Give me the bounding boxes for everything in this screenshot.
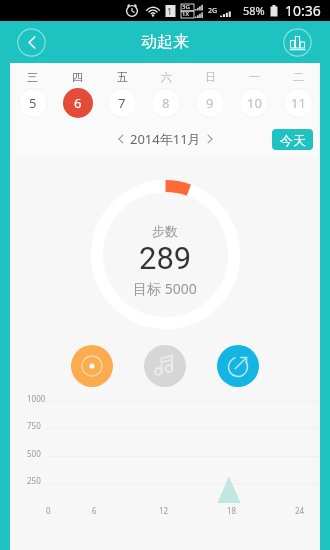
staticText: 2G [208, 6, 218, 16]
staticText: 5 [29, 94, 37, 112]
button[interactable]: Back [17, 28, 46, 57]
button[interactable]: Previous month [112, 130, 130, 148]
staticText: 9 [206, 94, 214, 112]
staticText: 250 [27, 475, 41, 486]
staticText: 500 [27, 448, 41, 459]
button[interactable]: 二 [276, 63, 320, 120]
staticText: 10 [247, 94, 262, 112]
staticText: 10:36 [285, 1, 321, 20]
staticText: 二 [293, 70, 304, 84]
staticText: 三 [27, 70, 38, 84]
staticText: 58% [243, 3, 265, 18]
staticText: 四 [72, 70, 83, 84]
staticText: 目标 5000 [133, 279, 197, 298]
staticText: 1 [167, 5, 173, 17]
staticText: 六 [161, 70, 172, 84]
staticText: 12 [159, 505, 169, 516]
button[interactable]: 一 [232, 63, 276, 120]
button[interactable]: 三 [10, 63, 55, 120]
button[interactable]: Statistics [283, 28, 312, 57]
staticText: 1X [182, 10, 189, 18]
staticText: 24 [295, 505, 305, 516]
staticText: 8 [162, 94, 170, 112]
staticText: 日 [205, 70, 216, 84]
staticText: 0 [46, 505, 51, 516]
button[interactable]: 六 [144, 63, 188, 120]
button[interactable]: Record [71, 345, 113, 387]
staticText: 五 [117, 70, 128, 84]
staticText: 2014年11月 [130, 130, 201, 148]
button[interactable]: Share [217, 345, 259, 387]
staticText: 7 [118, 94, 126, 112]
button[interactable]: Music [144, 345, 186, 387]
button[interactable]: 日 [188, 63, 232, 120]
staticText: 750 [27, 420, 41, 431]
button[interactable]: 五 [100, 63, 144, 120]
staticText: 18 [227, 505, 237, 516]
staticText: 11 [291, 94, 306, 112]
staticText: 6 [74, 94, 82, 112]
staticText: 动起来 [141, 32, 189, 52]
button[interactable]: 四 [55, 63, 100, 120]
button[interactable]: Next month [201, 130, 219, 148]
staticText: 一 [249, 70, 260, 84]
staticText: 1000 [27, 393, 46, 404]
staticText: 步数 [152, 223, 178, 239]
staticText: 3G [182, 3, 190, 11]
staticText: 6 [92, 505, 97, 516]
staticText: 今天 [280, 132, 306, 148]
staticText: 289 [139, 240, 192, 276]
button[interactable]: 今天 [272, 129, 313, 150]
